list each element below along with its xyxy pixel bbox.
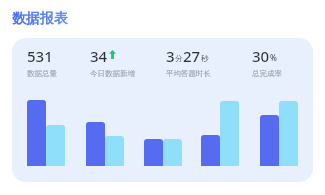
staticText: 34 <box>90 46 108 66</box>
staticText: 平均答题时长 <box>166 69 211 78</box>
staticText: 数据总量 <box>27 69 57 78</box>
button[interactable]: 531 <box>12 38 313 182</box>
staticText: 今日数据新增 <box>90 69 135 78</box>
staticText: 数据报表 <box>12 10 68 28</box>
staticText: 531 <box>27 46 53 66</box>
button[interactable]: 3 <box>166 46 211 78</box>
staticText: 27 <box>183 46 201 66</box>
button[interactable]: 531 <box>27 46 57 78</box>
other: Increase <box>109 50 116 59</box>
staticText: 秒 <box>201 54 209 63</box>
button[interactable]: 34 <box>90 46 135 78</box>
button[interactable]: 数据报表 <box>10 8 70 30</box>
staticText: 总完成率 <box>252 69 282 78</box>
staticText: 分 <box>175 54 183 63</box>
staticText: % <box>270 52 277 63</box>
button[interactable]: 30 <box>252 46 282 78</box>
staticText: 3 <box>166 46 175 66</box>
staticText: 30 <box>252 46 270 66</box>
